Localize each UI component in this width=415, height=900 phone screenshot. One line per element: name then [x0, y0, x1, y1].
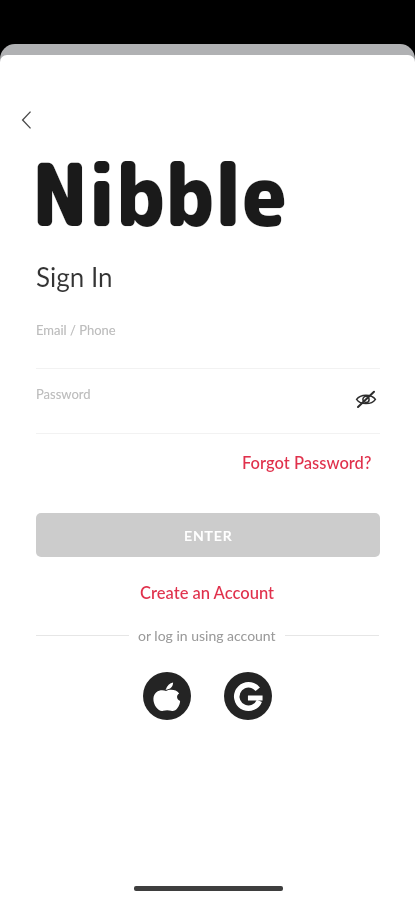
button[interactable]: Show password [351, 384, 381, 414]
staticText: Email / Phone [36, 322, 116, 338]
button[interactable]: Sign in with Google [224, 672, 272, 720]
staticText: Forgot Password? [242, 453, 372, 473]
button[interactable]: Sign in with Apple [143, 672, 191, 720]
button[interactable]: Create an Account [137, 579, 278, 607]
staticText: Nibble [32, 134, 287, 254]
staticText: Sign In [36, 261, 113, 292]
staticText: ENTER [184, 527, 233, 544]
button[interactable]: ENTER [36, 513, 380, 557]
button[interactable]: Forgot Password? [240, 449, 374, 477]
staticText: Password [36, 386, 91, 402]
staticText: Create an Account [140, 583, 275, 603]
staticText: or log in using account [138, 627, 276, 644]
button[interactable]: Back [5, 98, 49, 142]
